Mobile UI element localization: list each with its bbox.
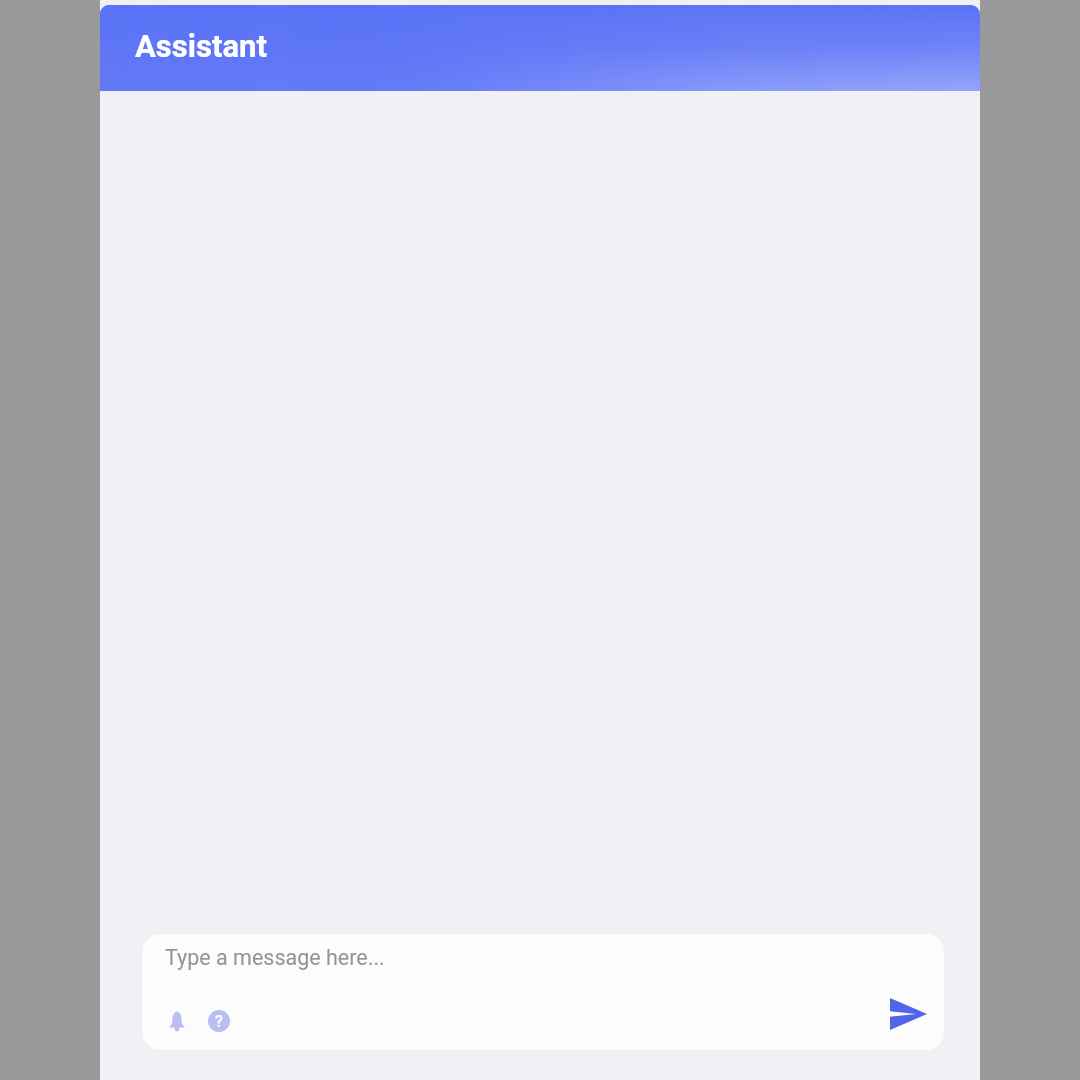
button[interactable]: Notifications: [160, 1004, 194, 1038]
staticText: Type a message here...: [165, 945, 385, 970]
button[interactable]: Help: [202, 1004, 236, 1038]
button[interactable]: Send: [880, 986, 936, 1042]
button[interactable]: Type a message here...: [142, 934, 944, 1050]
staticText: Assistant: [135, 28, 267, 64]
staticText: ?: [215, 1012, 223, 1031]
